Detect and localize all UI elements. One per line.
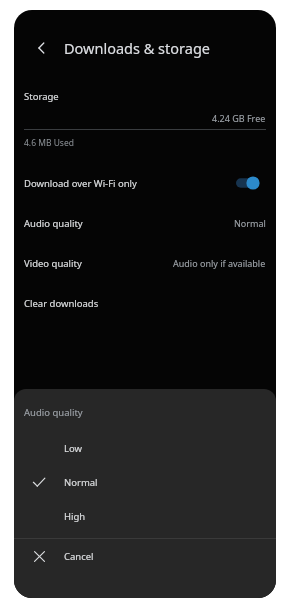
staticText: Download over Wi-Fi only	[24, 177, 236, 190]
button[interactable]: High	[14, 499, 276, 533]
staticText: 4.24 GB Free	[212, 112, 266, 124]
staticText: Video quality	[24, 257, 173, 270]
staticText: Storage	[24, 90, 59, 103]
button[interactable]: Low	[14, 431, 276, 465]
button[interactable]: Normal	[14, 465, 276, 499]
button[interactable]: Clear downloads	[14, 283, 276, 323]
staticText: Clear downloads	[24, 297, 266, 310]
button[interactable]: Cancel	[14, 539, 276, 573]
staticText: Audio quality	[24, 217, 234, 230]
staticText: Audio only if available	[173, 257, 266, 269]
staticText: 4.6 MB Used	[24, 137, 74, 149]
button[interactable]: Storage	[14, 86, 276, 155]
staticText: Audio quality	[24, 406, 83, 419]
staticText: Downloads & storage	[64, 38, 210, 58]
staticText: Normal	[64, 476, 98, 489]
staticText: High	[64, 510, 86, 523]
staticText: Cancel	[64, 550, 94, 563]
button[interactable]: Download over Wi-Fi only	[14, 163, 276, 203]
button[interactable]: Audio quality	[14, 203, 276, 243]
staticText: Normal	[234, 217, 266, 229]
button[interactable]: Video quality	[14, 243, 276, 283]
button[interactable]: Back	[24, 30, 60, 66]
staticText: Low	[64, 442, 83, 455]
